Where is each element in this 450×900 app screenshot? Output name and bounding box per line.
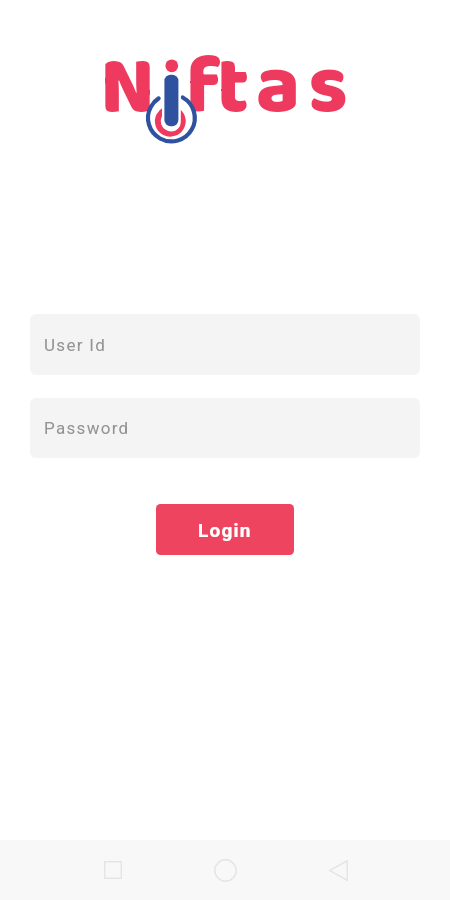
staticText: Login xyxy=(198,519,252,541)
staticText: a xyxy=(256,24,301,163)
staticText: User Id xyxy=(44,335,107,355)
staticText: f xyxy=(186,24,221,163)
staticText: Password xyxy=(44,418,130,438)
button[interactable]: User Id xyxy=(30,314,420,375)
button[interactable]: Login xyxy=(156,504,294,555)
button[interactable]: Password xyxy=(30,398,420,458)
staticText: t xyxy=(217,24,250,163)
staticText: s xyxy=(308,24,348,163)
staticText: N xyxy=(100,24,155,163)
